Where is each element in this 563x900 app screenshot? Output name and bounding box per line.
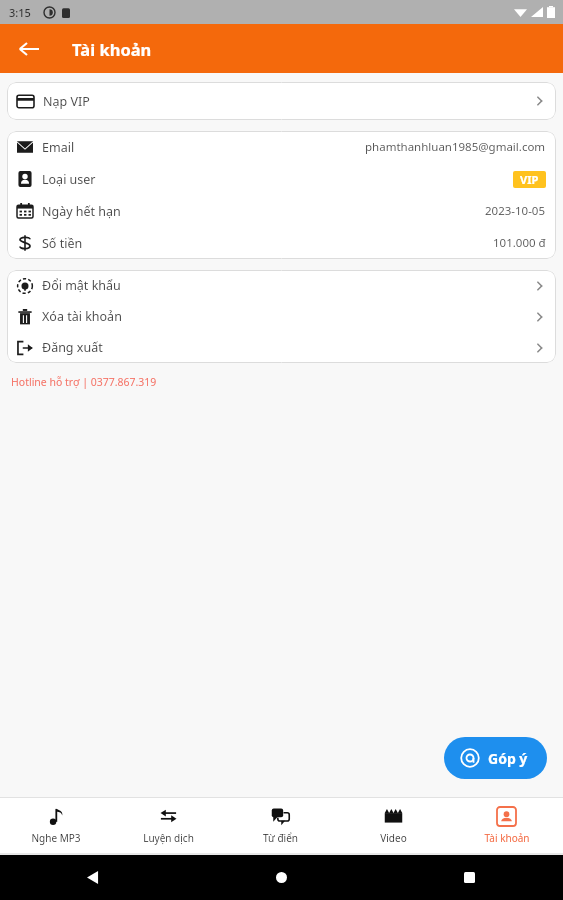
staticText: Số tiền (42, 235, 83, 252)
staticText: Email (42, 139, 75, 156)
button[interactable]: Từ điển (224, 798, 337, 853)
button[interactable]: Tài khoản (450, 798, 563, 853)
staticText: Luyện dịch (143, 831, 194, 845)
staticText: 2023-10-05 (485, 203, 546, 219)
staticText: Ngày hết hạn (42, 203, 121, 220)
staticText: phamthanhluan1985@gmail.com (365, 139, 546, 155)
button[interactable]: Xóa tài khoản (7, 301, 556, 332)
staticText: Tài khoản (484, 831, 530, 845)
staticText: VIP (520, 172, 539, 187)
button[interactable]: Đăng xuất (7, 332, 556, 363)
button[interactable]: Ngày hết hạn (7, 195, 556, 227)
staticText: Loại user (42, 171, 96, 188)
button[interactable]: Loại user (7, 163, 556, 195)
staticText: Tài khoản (72, 38, 152, 60)
button[interactable]: Luyện dịch (112, 798, 224, 853)
staticText: Nghe MP3 (31, 831, 81, 845)
staticText: 3:15 (9, 5, 31, 20)
staticText: Hotline hỗ trợ | 0377.867.319 (11, 375, 157, 389)
staticText: Video (380, 831, 407, 845)
button[interactable]: Back (12, 32, 46, 66)
button[interactable]: Email (7, 131, 556, 163)
staticText: Từ điển (263, 831, 298, 845)
button[interactable]: Góp ý (444, 737, 547, 779)
staticText: 101.000 đ (493, 235, 546, 251)
staticText: Đăng xuất (42, 339, 103, 356)
button[interactable]: Nạp VIP (7, 82, 556, 120)
button[interactable]: Video (337, 798, 450, 853)
button[interactable]: Đổi mật khẩu (7, 270, 556, 301)
staticText: Đổi mật khẩu (42, 277, 121, 294)
button[interactable]: Số tiền (7, 227, 556, 259)
staticText: Nạp VIP (43, 93, 90, 110)
button[interactable]: Nghe MP3 (0, 798, 112, 853)
staticText: Góp ý (488, 749, 528, 768)
staticText: Xóa tài khoản (42, 308, 122, 325)
